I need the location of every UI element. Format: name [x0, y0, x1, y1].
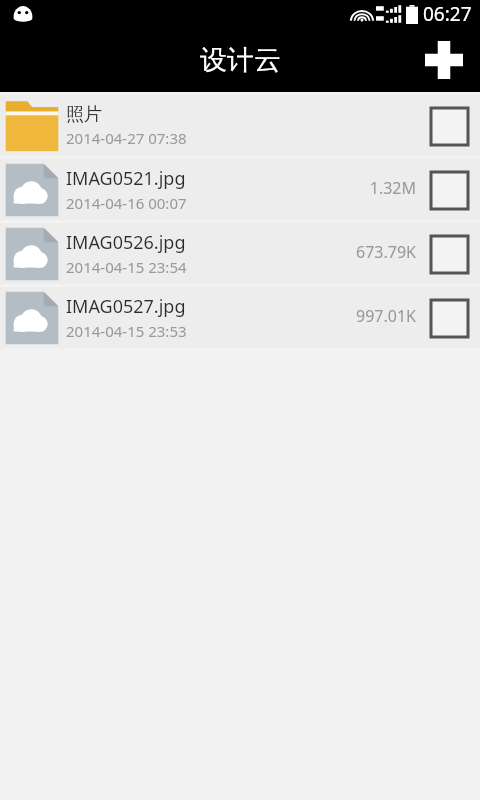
staticText: 673.79K [356, 241, 416, 263]
button[interactable]: IMAG0526.jpg [0, 223, 480, 284]
button[interactable]: IMAG0521.jpg [0, 159, 480, 220]
staticText: 06:27 [423, 1, 472, 27]
staticText: 2014-04-15 23:53 [66, 321, 187, 341]
staticText: 2014-04-15 23:54 [66, 257, 187, 277]
button[interactable]: Select IMAG0521.jpg [426, 167, 472, 213]
button[interactable]: Select 照片 [426, 103, 472, 149]
button[interactable]: Select IMAG0527.jpg [426, 295, 472, 341]
button[interactable]: Select IMAG0526.jpg [426, 231, 472, 277]
staticText: 设计云 [200, 43, 281, 77]
staticText: 1.32M [369, 177, 416, 199]
button[interactable]: IMAG0527.jpg [0, 287, 480, 348]
staticText: 2014-04-27 07:38 [66, 128, 187, 148]
staticText: IMAG0527.jpg [66, 294, 186, 319]
button[interactable]: Add [418, 34, 470, 86]
staticText: 照片 [66, 103, 102, 126]
staticText: IMAG0521.jpg [66, 166, 186, 191]
staticText: 2014-04-16 00:07 [66, 193, 187, 213]
staticText: IMAG0526.jpg [66, 230, 186, 255]
staticText: 997.01K [356, 305, 416, 327]
button[interactable]: 照片 [0, 95, 480, 156]
